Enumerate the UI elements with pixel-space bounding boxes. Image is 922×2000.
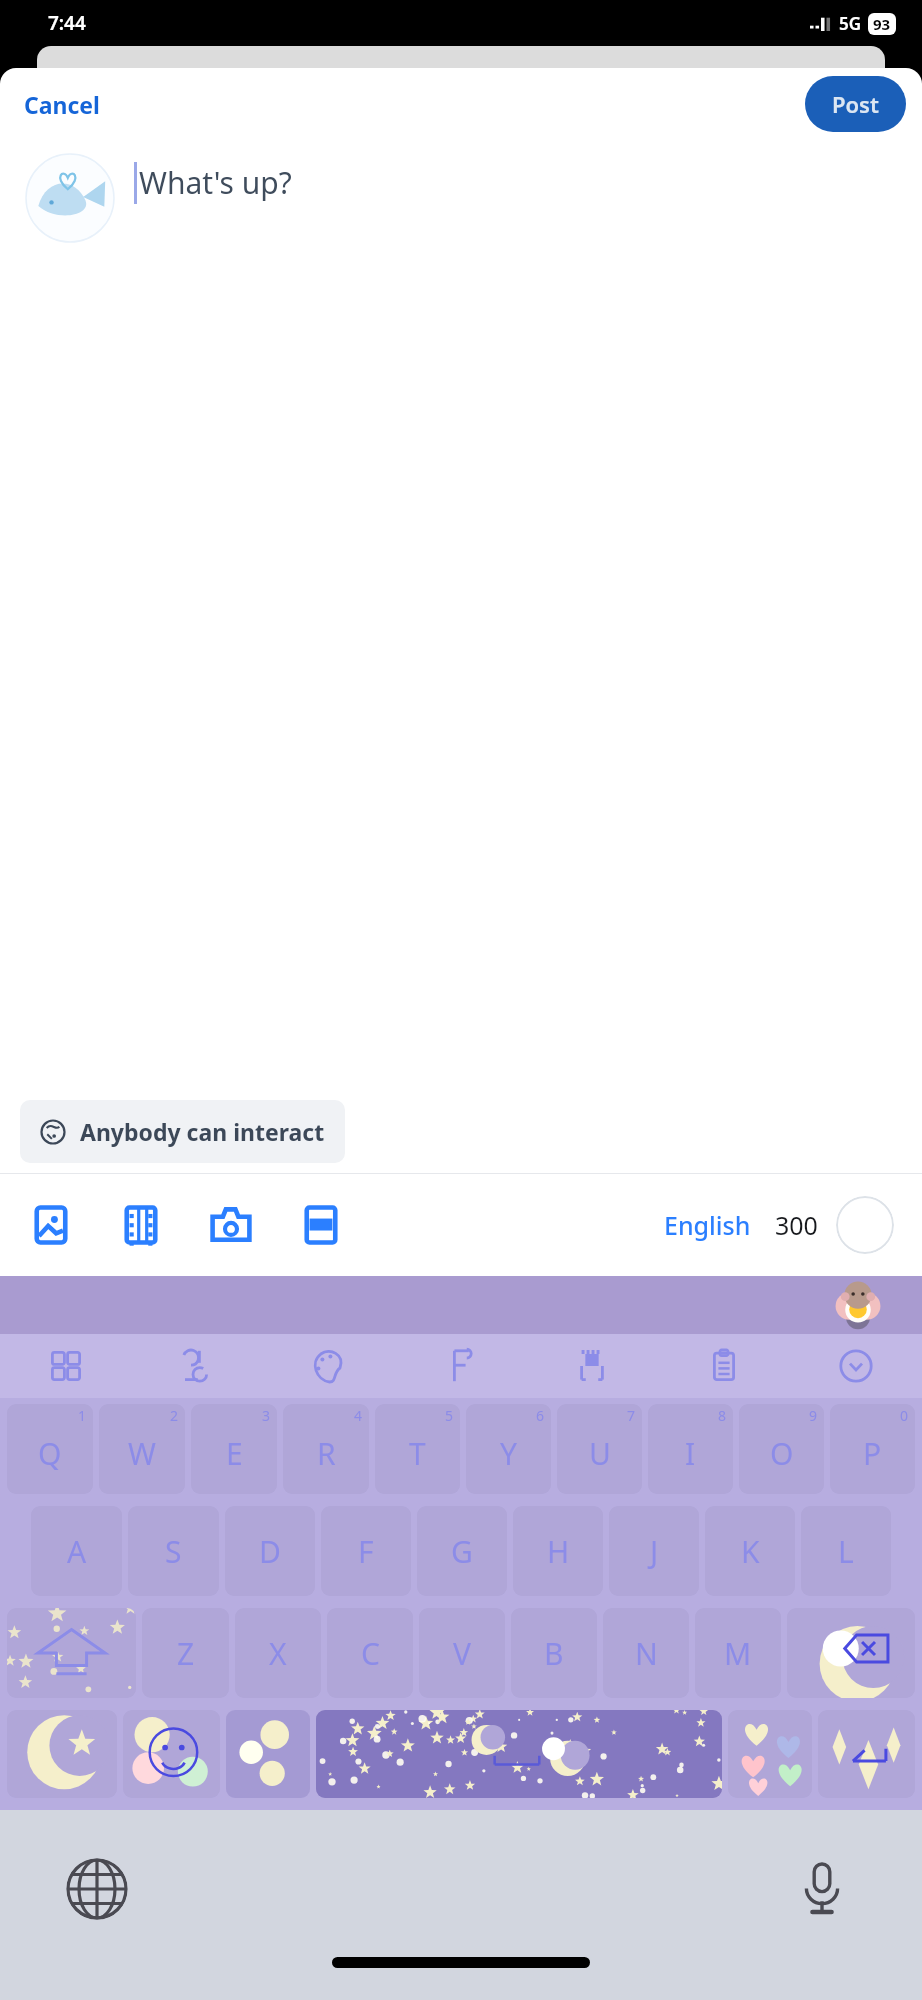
staticText: 1 [78, 1406, 87, 1425]
staticText: Z [177, 1633, 195, 1674]
staticText: M [724, 1633, 752, 1674]
staticText: 5G [839, 12, 862, 35]
button[interactable]: English [660, 1204, 755, 1246]
button[interactable]: 4 [283, 1404, 369, 1494]
staticText: J [650, 1531, 659, 1572]
staticText: C [361, 1633, 380, 1674]
staticText: F [358, 1531, 374, 1572]
button[interactable]: K [705, 1506, 795, 1596]
button[interactable]: 2 [99, 1404, 185, 1494]
staticText: English [664, 1208, 751, 1242]
staticText: O [770, 1433, 794, 1474]
button[interactable]: Keyboard layouts [0, 1334, 131, 1398]
staticText: 6 [536, 1406, 545, 1425]
staticText: H [547, 1531, 570, 1572]
button[interactable]: 8 [648, 1404, 733, 1494]
button[interactable]: 6 [466, 1404, 551, 1494]
staticText: 4 [354, 1406, 363, 1425]
staticText: Anybody can interact [80, 1116, 325, 1147]
staticText: Post [832, 89, 879, 119]
button[interactable]: Shift [7, 1608, 136, 1698]
staticText: R [317, 1433, 336, 1474]
button[interactable]: C [327, 1608, 413, 1698]
button[interactable]: H [513, 1506, 603, 1596]
staticText: U [589, 1433, 611, 1474]
button[interactable]: Character progress [836, 1196, 894, 1254]
staticText: L [838, 1531, 854, 1572]
button[interactable]: Enter [818, 1710, 915, 1798]
button[interactable]: D [225, 1506, 315, 1596]
staticText: 93 [873, 14, 891, 34]
button[interactable]: M [695, 1608, 781, 1698]
button[interactable]: Stickers [526, 1334, 658, 1398]
button[interactable]: 0 [830, 1404, 915, 1494]
button[interactable]: S [128, 1506, 219, 1596]
button[interactable]: X [235, 1608, 321, 1698]
button[interactable]: Theme [262, 1334, 394, 1398]
staticText: G [451, 1531, 473, 1572]
button[interactable]: Voice input [792, 1858, 852, 1918]
button[interactable]: 9 [739, 1404, 824, 1494]
button[interactable]: 1 [7, 1404, 93, 1494]
button[interactable]: Sticker [836, 1283, 880, 1327]
button[interactable]: Period [728, 1710, 812, 1798]
button[interactable]: Emoji [123, 1710, 220, 1798]
staticText: V [453, 1633, 471, 1674]
staticText: Q [38, 1433, 62, 1474]
staticText: 3 [262, 1406, 271, 1425]
button[interactable]: Add video [118, 1202, 164, 1248]
button[interactable]: Backspace [787, 1608, 915, 1698]
button[interactable]: Comma [226, 1710, 310, 1798]
staticText: X [269, 1633, 287, 1674]
button[interactable]: Collapse [790, 1334, 922, 1398]
staticText: 8 [718, 1406, 727, 1425]
staticText: N [635, 1633, 658, 1674]
button[interactable]: 7 [557, 1404, 642, 1494]
staticText: Y [500, 1433, 517, 1474]
staticText: S [165, 1531, 182, 1572]
button[interactable]: 5 [375, 1404, 460, 1494]
staticText: K [741, 1531, 760, 1572]
button[interactable]: Change language [66, 1858, 128, 1920]
button[interactable]: B [511, 1608, 597, 1698]
button[interactable]: Post [805, 76, 906, 132]
button[interactable]: J [609, 1506, 699, 1596]
staticText: W [128, 1433, 156, 1474]
staticText: What's up? [139, 162, 292, 203]
button[interactable]: F [321, 1506, 411, 1596]
staticText: 300 [775, 1208, 818, 1242]
button[interactable]: G [417, 1506, 507, 1596]
button[interactable]: A [31, 1506, 122, 1596]
staticText: Cancel [24, 89, 100, 120]
staticText: E [226, 1433, 243, 1474]
staticText: 2 [170, 1406, 179, 1425]
button[interactable]: Anybody can interact [20, 1100, 345, 1163]
button[interactable]: V [419, 1608, 505, 1698]
button[interactable]: N [603, 1608, 689, 1698]
button[interactable]: Clipboard [658, 1334, 790, 1398]
staticText: 9 [809, 1406, 818, 1425]
button[interactable]: Translate [131, 1334, 262, 1398]
staticText: D [259, 1531, 281, 1572]
staticText: 5 [445, 1406, 454, 1425]
staticText: 0 [900, 1406, 909, 1425]
staticText: 7:44 [48, 10, 86, 36]
staticText: I [685, 1433, 696, 1474]
button[interactable]: Add GIF [298, 1202, 344, 1248]
button[interactable]: Font [394, 1334, 526, 1398]
button[interactable]: Numbers [7, 1710, 117, 1798]
button[interactable]: L [801, 1506, 891, 1596]
button[interactable]: 3 [191, 1404, 277, 1494]
button[interactable]: Add photo [28, 1202, 74, 1248]
staticText: B [544, 1633, 564, 1674]
button[interactable]: Cancel [18, 85, 106, 124]
button[interactable]: Space [316, 1710, 722, 1798]
staticText: 7 [627, 1406, 636, 1425]
button[interactable]: Camera [208, 1202, 254, 1248]
staticText: P [863, 1433, 882, 1474]
staticText: T [409, 1433, 426, 1474]
staticText: A [67, 1531, 87, 1572]
button[interactable]: Z [142, 1608, 229, 1698]
